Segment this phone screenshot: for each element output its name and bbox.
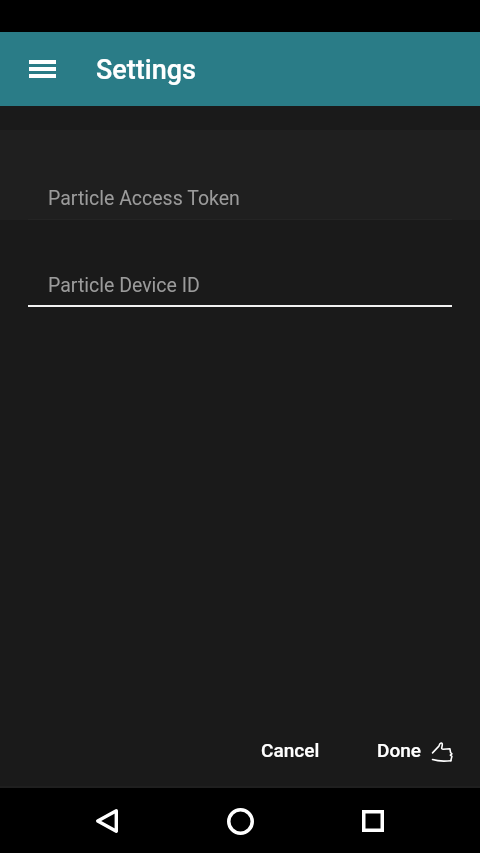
staticText: Cancel xyxy=(261,739,320,761)
staticText: Particle Access Token xyxy=(48,187,240,210)
button[interactable]: Home xyxy=(216,797,264,845)
button[interactable]: Back xyxy=(83,797,131,845)
button[interactable]: Particle Access Token xyxy=(0,130,480,220)
staticText: Particle Device ID xyxy=(48,274,200,297)
staticText: Settings xyxy=(96,54,196,86)
staticText: Done xyxy=(377,739,421,761)
button[interactable]: Open navigation drawer xyxy=(18,45,66,93)
button[interactable]: Done xyxy=(368,730,462,770)
button[interactable]: Cancel xyxy=(246,730,335,770)
button[interactable]: Particle Device ID xyxy=(0,220,480,308)
button[interactable]: Recent apps xyxy=(349,797,397,845)
